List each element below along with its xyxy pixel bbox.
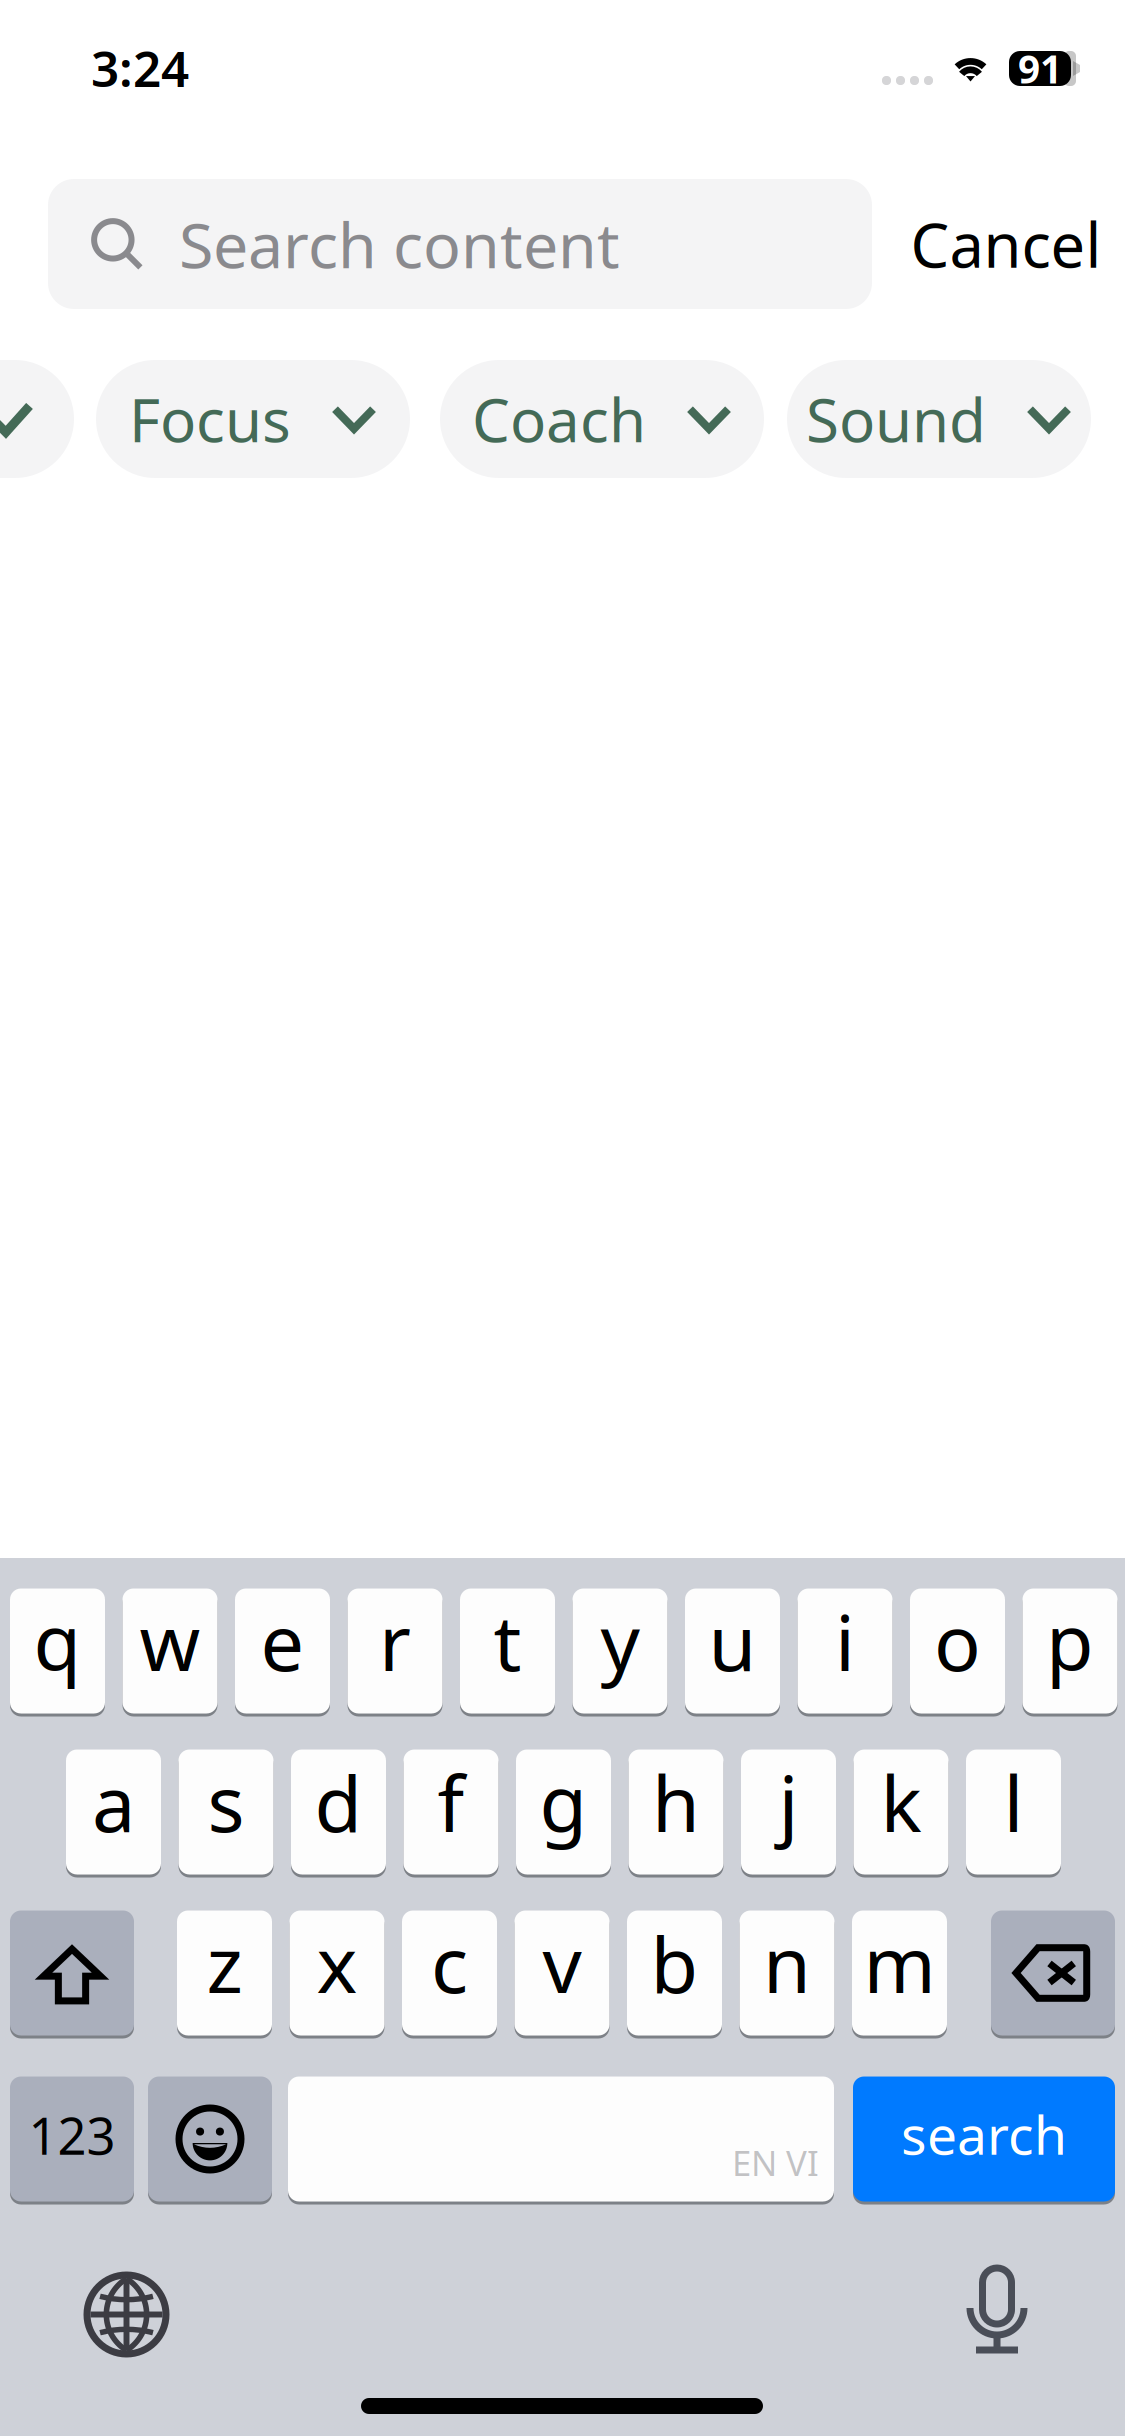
- staticText: h: [652, 1751, 700, 1853]
- staticText: q: [33, 1590, 81, 1692]
- staticText: search: [901, 2099, 1067, 2169]
- staticText: z: [206, 1912, 242, 2014]
- button[interactable]: [10, 1909, 134, 2037]
- staticText: Cancel: [910, 203, 1101, 285]
- button[interactable]: q: [10, 1587, 105, 1715]
- staticText: 91: [1018, 43, 1062, 94]
- staticText: f: [437, 1751, 464, 1853]
- button[interactable]: [148, 2075, 272, 2203]
- button[interactable]: c: [402, 1909, 497, 2037]
- staticText: d: [314, 1751, 362, 1853]
- button[interactable]: EN VI: [288, 2075, 834, 2203]
- staticText: u: [708, 1590, 756, 1692]
- button[interactable]: n: [739, 1909, 834, 2037]
- staticText: Sound: [806, 379, 986, 459]
- button[interactable]: Dictate: [969, 2268, 1025, 2356]
- staticText: EN VI: [732, 2139, 819, 2185]
- button[interactable]: g: [516, 1748, 611, 1876]
- button[interactable]: Selected filter: [0, 360, 74, 478]
- staticText: Search content: [179, 202, 620, 286]
- button[interactable]: Cancel: [898, 179, 1114, 309]
- button[interactable]: Switch keyboard: [87, 2275, 166, 2354]
- staticText: a: [92, 1751, 135, 1853]
- staticText: Coach: [472, 379, 646, 459]
- button[interactable]: s: [178, 1748, 273, 1876]
- button[interactable]: Sound: [787, 360, 1091, 478]
- button[interactable]: j: [741, 1748, 836, 1876]
- staticText: Focus: [129, 379, 291, 459]
- button[interactable]: search: [853, 2075, 1115, 2203]
- button[interactable]: r: [347, 1587, 442, 1715]
- staticText: g: [539, 1751, 587, 1853]
- button[interactable]: a: [66, 1748, 161, 1876]
- button[interactable]: b: [627, 1909, 722, 2037]
- button[interactable]: v: [514, 1909, 609, 2037]
- staticText: v: [542, 1912, 581, 2014]
- button[interactable]: k: [853, 1748, 948, 1876]
- staticText: 123: [28, 2101, 115, 2169]
- staticText: b: [650, 1912, 698, 2014]
- staticText: s: [207, 1751, 244, 1853]
- button[interactable]: t: [460, 1587, 555, 1715]
- staticText: w: [139, 1590, 200, 1692]
- button[interactable]: l: [966, 1748, 1061, 1876]
- staticText: o: [934, 1590, 981, 1692]
- button[interactable]: f: [403, 1748, 498, 1876]
- button[interactable]: u: [685, 1587, 780, 1715]
- staticText: r: [379, 1590, 411, 1692]
- button[interactable]: Focus: [96, 360, 410, 478]
- staticText: x: [316, 1912, 357, 2014]
- button[interactable]: o: [910, 1587, 1005, 1715]
- staticText: y: [600, 1590, 639, 1692]
- staticText: p: [1046, 1590, 1094, 1692]
- staticText: j: [778, 1751, 798, 1853]
- button[interactable]: [991, 1909, 1115, 2037]
- button[interactable]: p: [1022, 1587, 1117, 1715]
- staticText: e: [260, 1590, 304, 1692]
- staticText: l: [1003, 1751, 1023, 1853]
- button[interactable]: w: [122, 1587, 217, 1715]
- staticText: m: [863, 1912, 935, 2014]
- button[interactable]: d: [291, 1748, 386, 1876]
- button[interactable]: e: [235, 1587, 330, 1715]
- button[interactable]: m: [852, 1909, 947, 2037]
- staticText: k: [880, 1751, 921, 1853]
- button[interactable]: x: [289, 1909, 384, 2037]
- button[interactable]: i: [797, 1587, 892, 1715]
- staticText: i: [835, 1590, 855, 1692]
- staticText: c: [431, 1912, 468, 2014]
- staticText: 3:24: [91, 35, 189, 100]
- button[interactable]: y: [572, 1587, 667, 1715]
- staticText: t: [493, 1590, 521, 1692]
- button[interactable]: h: [628, 1748, 723, 1876]
- button[interactable]: z: [177, 1909, 272, 2037]
- staticText: n: [763, 1912, 811, 2014]
- button[interactable]: Coach: [440, 360, 764, 478]
- button[interactable]: 123: [10, 2075, 134, 2203]
